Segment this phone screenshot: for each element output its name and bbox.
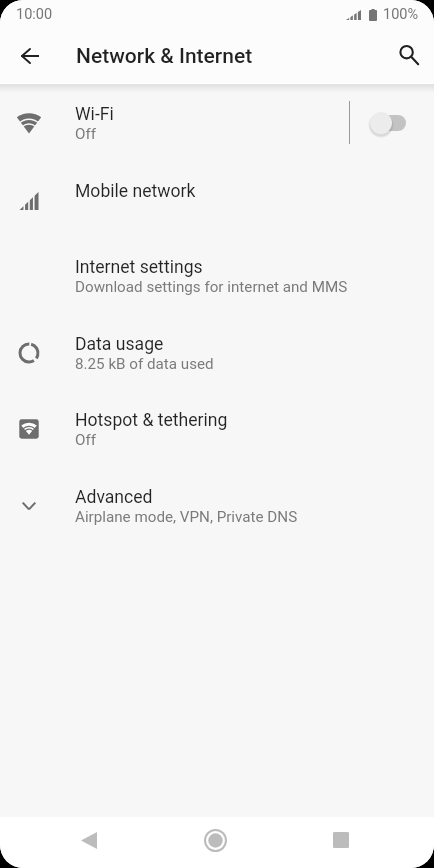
staticText: Advanced	[75, 487, 153, 508]
staticText: Download settings for internet and MMS	[75, 278, 348, 296]
staticText: 8.25 kB of data used	[75, 355, 214, 373]
staticText: Data usage	[75, 334, 164, 355]
button[interactable]: Back	[65, 816, 113, 864]
staticText: Off	[75, 431, 97, 449]
staticText: Mobile network	[75, 181, 196, 202]
staticText: Internet settings	[75, 257, 203, 278]
button[interactable]: Advanced	[0, 467, 434, 544]
staticText: Network & Internet	[76, 44, 253, 69]
button[interactable]: Recent apps	[317, 816, 365, 864]
staticText: 100%	[383, 6, 419, 23]
button[interactable]: Search	[388, 34, 430, 76]
staticText: Wi-Fi	[75, 104, 114, 125]
staticText: Off	[75, 125, 97, 143]
staticText: 10:00	[16, 6, 53, 23]
button[interactable]: Internet settings	[0, 237, 434, 314]
button[interactable]: Navigate up	[11, 37, 49, 75]
button[interactable]: Hotspot & tethering	[0, 390, 434, 467]
button[interactable]: Wi-Fi toggle	[361, 102, 419, 143]
button[interactable]: Data usage	[0, 314, 434, 391]
button[interactable]: Mobile network	[0, 161, 434, 238]
button[interactable]: Wi-Fi	[0, 84, 434, 161]
staticText: Airplane mode, VPN, Private DNS	[75, 508, 298, 526]
staticText: Hotspot & tethering	[75, 410, 228, 431]
button[interactable]: Home	[191, 816, 239, 864]
